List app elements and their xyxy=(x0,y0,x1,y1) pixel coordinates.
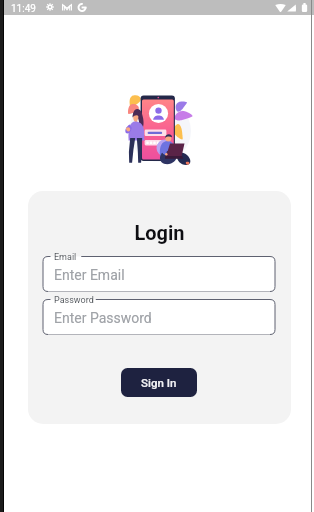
staticText: Enter Password xyxy=(54,310,152,326)
button[interactable]: Password xyxy=(43,293,275,335)
staticText: Password xyxy=(54,295,94,306)
staticText: 11:49 xyxy=(11,3,36,15)
staticText: Sign In xyxy=(141,376,177,389)
button[interactable]: Email xyxy=(43,250,275,292)
staticText: Enter Email xyxy=(54,267,125,283)
button[interactable]: Sign In xyxy=(121,368,197,397)
staticText: Login xyxy=(28,221,291,244)
staticText: Email xyxy=(54,252,77,263)
